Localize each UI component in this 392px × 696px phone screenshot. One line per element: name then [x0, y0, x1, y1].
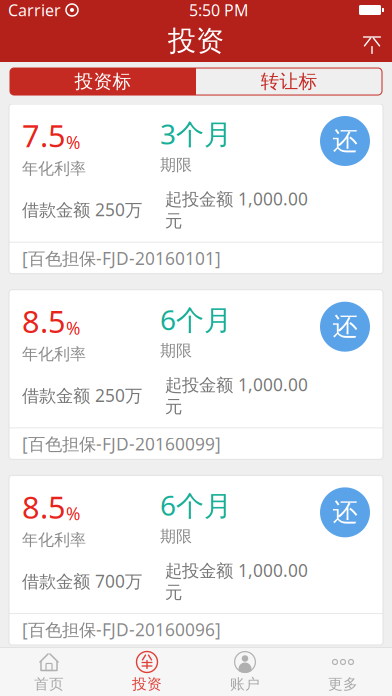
staticText: 年化利率	[22, 159, 86, 178]
button[interactable]: Filter	[352, 20, 392, 62]
button[interactable]: 投资	[98, 648, 196, 696]
staticText: 7.5	[22, 115, 66, 156]
staticText: 3个月	[160, 672, 232, 696]
staticText: 投资	[168, 24, 224, 58]
staticText: 年化利率	[22, 344, 86, 364]
staticText: 8.5	[22, 301, 66, 341]
button[interactable]: 8.5	[9, 290, 383, 459]
button[interactable]: 转让标	[196, 68, 382, 95]
staticText: 借款金额 250万	[22, 384, 142, 407]
staticText: 6个月	[160, 301, 232, 338]
staticText: 还	[332, 497, 357, 528]
staticText: 还	[332, 125, 357, 156]
staticText: 还	[332, 311, 357, 342]
staticText: 期限	[160, 527, 192, 546]
staticText: 账户	[230, 675, 260, 693]
staticText: 借款金额 250万	[22, 198, 142, 221]
staticText: 首页	[34, 675, 64, 693]
staticText: [百色担保-FJD-20160096]	[22, 618, 221, 641]
button[interactable]: 还	[320, 116, 370, 166]
staticText: 8.0	[22, 672, 66, 696]
staticText: 6个月	[160, 486, 232, 524]
staticText: 起投金额 1,000.00元	[165, 373, 308, 417]
staticText: 5:50 PM	[189, 0, 249, 21]
staticText: 期限	[160, 155, 192, 175]
button[interactable]: 8.5	[9, 475, 383, 645]
staticText: 8.5	[22, 486, 66, 527]
staticText: 期限	[160, 341, 192, 361]
button[interactable]: 还	[320, 487, 370, 537]
button[interactable]: 首页	[0, 648, 98, 696]
button[interactable]: 8.0	[9, 661, 383, 696]
button[interactable]: 7.5	[9, 104, 383, 274]
staticText: %	[66, 502, 80, 525]
button[interactable]: 还	[320, 302, 370, 352]
staticText: [百色担保-FJD-20160101]	[22, 247, 221, 270]
staticText: 还	[332, 682, 357, 696]
staticText: 投资标	[74, 70, 131, 93]
staticText: 转让标	[260, 70, 317, 93]
button[interactable]: 账户	[196, 648, 294, 696]
staticText: 年化利率	[22, 530, 86, 550]
staticText: %	[66, 316, 80, 339]
button[interactable]: 还	[320, 673, 370, 696]
button[interactable]: 更多	[294, 648, 392, 696]
button[interactable]: 投资标	[10, 68, 196, 95]
staticText: 投资	[132, 675, 162, 693]
staticText: [百色担保-FJD-20160099]	[22, 432, 221, 455]
staticText: 更多	[328, 675, 358, 693]
staticText: %	[66, 131, 80, 154]
staticText: 借款金额 700万	[22, 569, 142, 592]
staticText: 起投金额 1,000.00元	[165, 187, 308, 232]
staticText: 起投金额 1,000.00元	[165, 559, 308, 603]
staticText: 3个月	[160, 115, 232, 152]
staticText: Carrier	[8, 0, 61, 21]
